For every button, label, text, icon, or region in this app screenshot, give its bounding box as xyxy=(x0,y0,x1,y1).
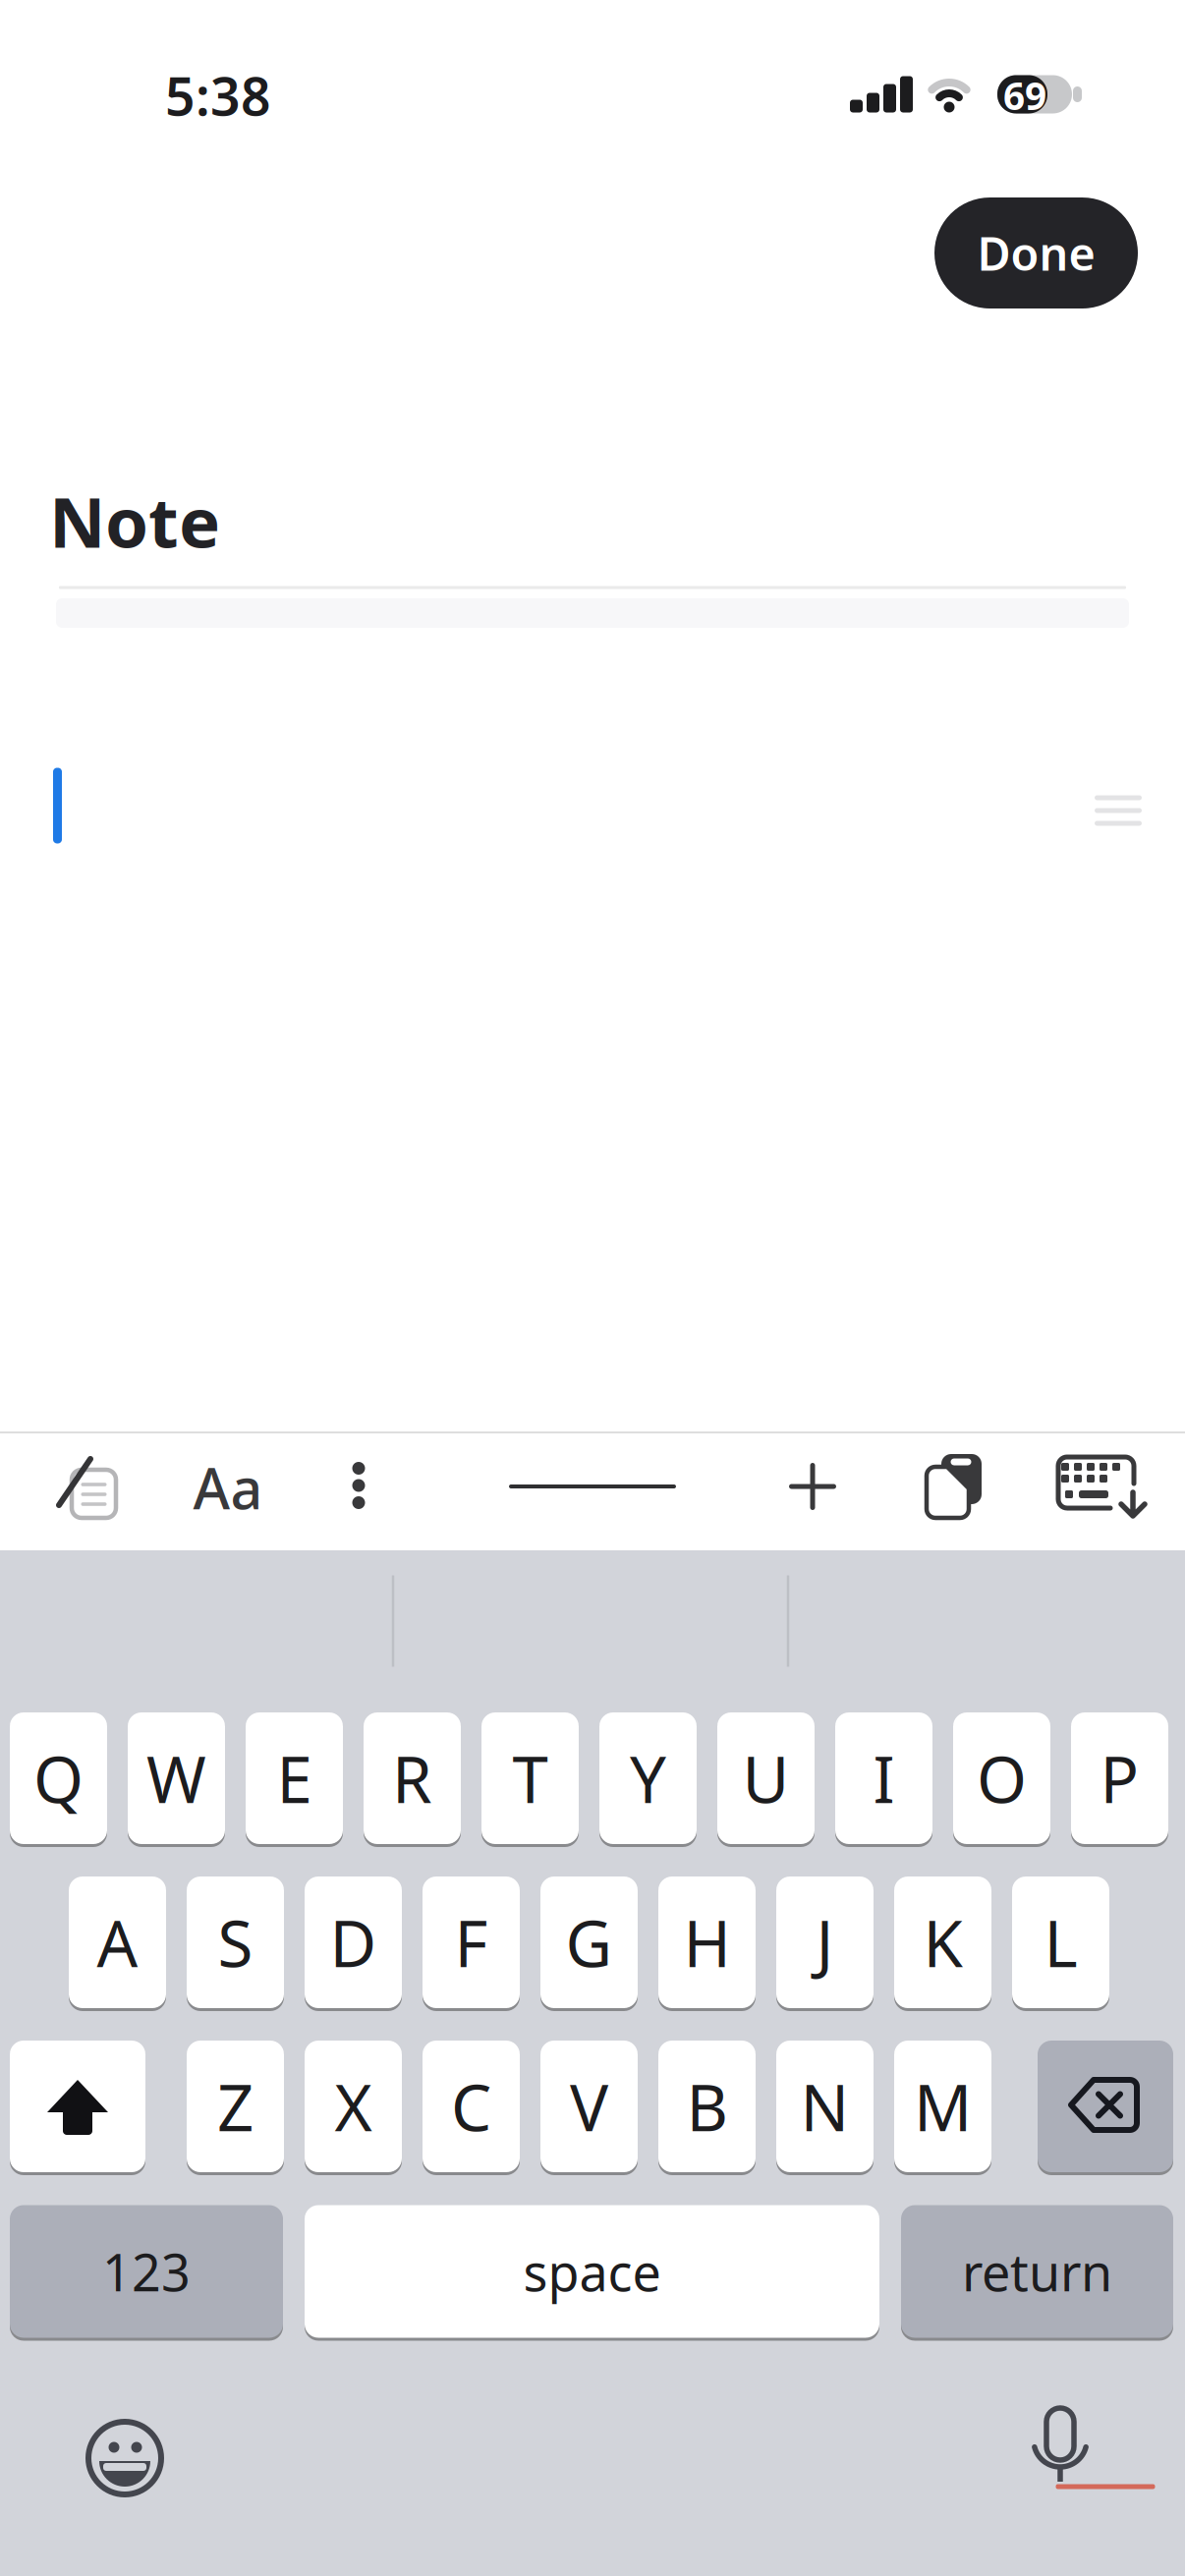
button[interactable]: T xyxy=(481,1711,579,1846)
staticText: R xyxy=(392,1736,432,1821)
button[interactable]: O xyxy=(953,1711,1050,1846)
button[interactable] xyxy=(915,1441,993,1530)
button[interactable]: R xyxy=(364,1711,461,1846)
button[interactable]: A xyxy=(69,1875,166,2010)
staticText: L xyxy=(1044,1900,1077,1985)
staticText: S xyxy=(218,1900,253,1985)
button[interactable]: I xyxy=(835,1711,932,1846)
button[interactable] xyxy=(1087,787,1150,834)
button[interactable]: P xyxy=(1071,1711,1168,1846)
button[interactable]: U xyxy=(717,1711,815,1846)
button[interactable]: N xyxy=(776,2039,874,2174)
staticText: X xyxy=(335,2064,372,2149)
button[interactable]: return xyxy=(901,2204,1173,2339)
button[interactable]: J xyxy=(776,1875,874,2010)
button[interactable]: W xyxy=(128,1711,225,1846)
button[interactable]: B xyxy=(658,2039,756,2174)
staticText: space xyxy=(523,2238,661,2305)
button[interactable]: F xyxy=(423,1875,520,2010)
staticText: B xyxy=(686,2064,728,2149)
staticText: 123 xyxy=(102,2238,191,2305)
staticText: Z xyxy=(217,2064,254,2149)
staticText: Note xyxy=(49,475,220,567)
staticText: T xyxy=(512,1736,548,1821)
staticText: Done xyxy=(977,223,1095,283)
staticText: H xyxy=(683,1900,731,1985)
button[interactable]: C xyxy=(423,2039,520,2174)
staticText: Y xyxy=(630,1736,666,1821)
staticText: N xyxy=(800,2064,849,2149)
staticText: D xyxy=(330,1900,377,1985)
staticText: G xyxy=(565,1900,613,1985)
button[interactable] xyxy=(81,2414,169,2502)
button[interactable]: E xyxy=(246,1711,343,1846)
button[interactable] xyxy=(1026,2406,1095,2494)
button[interactable] xyxy=(1038,2039,1173,2174)
staticText: K xyxy=(923,1900,962,1985)
button[interactable]: L xyxy=(1012,1875,1109,2010)
button[interactable] xyxy=(329,1441,388,1530)
button[interactable] xyxy=(773,1447,852,1526)
staticText: Aa xyxy=(193,1450,263,1525)
staticText: Q xyxy=(33,1736,84,1821)
button[interactable]: 123 xyxy=(10,2204,283,2339)
staticText: 5:38 xyxy=(165,61,271,130)
button[interactable]: Q xyxy=(10,1711,107,1846)
staticText: A xyxy=(97,1900,138,1985)
staticText: F xyxy=(454,1900,488,1985)
staticText: I xyxy=(873,1736,895,1821)
button[interactable]: K xyxy=(894,1875,991,2010)
staticText: M xyxy=(914,2064,972,2149)
button[interactable]: D xyxy=(305,1875,402,2010)
staticText: V xyxy=(570,2064,608,2149)
button[interactable]: S xyxy=(187,1875,284,2010)
button[interactable] xyxy=(1048,1447,1147,1526)
staticText: C xyxy=(451,2064,491,2149)
button[interactable] xyxy=(10,2039,145,2174)
button[interactable]: Done xyxy=(934,197,1138,308)
button[interactable]: Aa xyxy=(174,1443,282,1532)
staticText: O xyxy=(977,1736,1027,1821)
button[interactable] xyxy=(44,1442,133,1531)
staticText: E xyxy=(277,1736,312,1821)
button[interactable]: M xyxy=(894,2039,991,2174)
button[interactable]: Y xyxy=(599,1711,697,1846)
button[interactable]: Z xyxy=(187,2039,284,2174)
button[interactable]: H xyxy=(658,1875,756,2010)
staticText: J xyxy=(816,1900,834,1985)
staticText: 69 xyxy=(1003,70,1046,120)
button[interactable]: space xyxy=(305,2204,879,2339)
button[interactable]: G xyxy=(540,1875,638,2010)
staticText: U xyxy=(742,1736,790,1821)
staticText: W xyxy=(146,1736,206,1821)
button[interactable] xyxy=(499,1447,686,1526)
staticText: return xyxy=(962,2238,1112,2305)
staticText: P xyxy=(1100,1736,1139,1821)
button[interactable]: X xyxy=(305,2039,402,2174)
button[interactable]: V xyxy=(540,2039,638,2174)
